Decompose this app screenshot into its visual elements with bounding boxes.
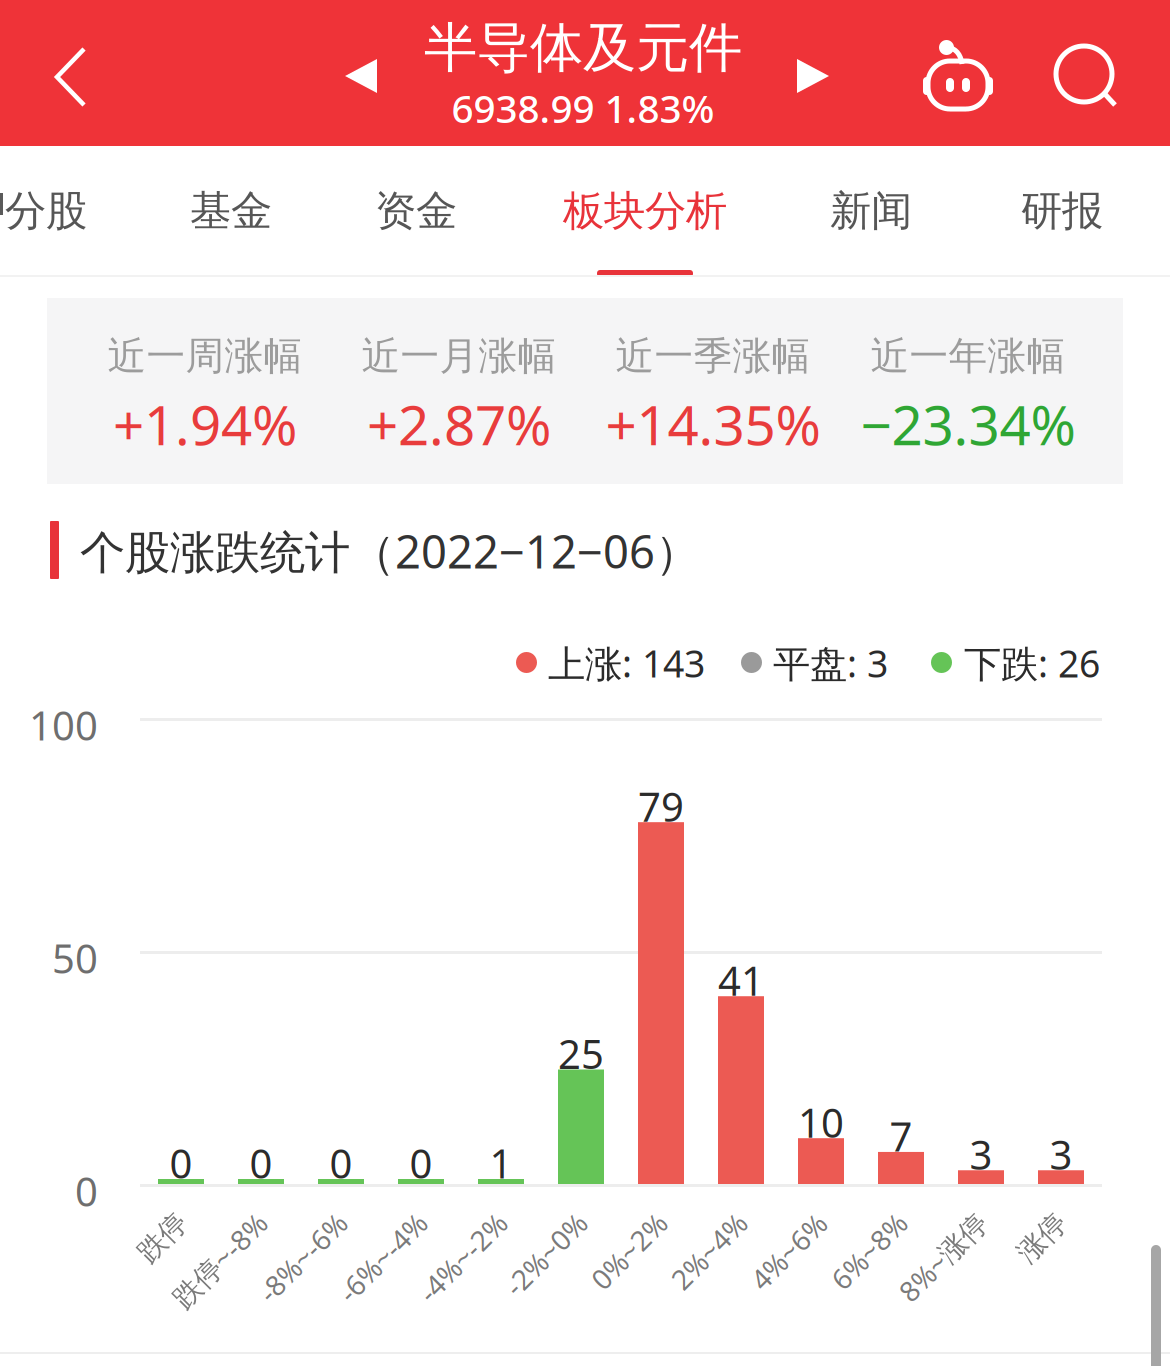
staticText: +14.35% bbox=[605, 388, 820, 460]
staticText: 跌停~-8% bbox=[160, 1242, 280, 1279]
button[interactable]: 分股 bbox=[0, 146, 146, 276]
staticText: −23.34% bbox=[860, 388, 1075, 460]
staticText: 涨停 bbox=[1014, 1221, 1070, 1255]
button[interactable]: Back bbox=[0, 0, 120, 146]
staticText: 近一季涨幅 bbox=[615, 332, 810, 380]
staticText: 基金 bbox=[190, 186, 272, 236]
staticText: -6%~-4% bbox=[327, 1239, 439, 1276]
staticText: 79 bbox=[638, 780, 684, 833]
staticText: -8%~-6% bbox=[247, 1239, 359, 1276]
staticText: 0 bbox=[169, 1136, 192, 1189]
staticText: 下跌: 26 bbox=[964, 638, 1100, 688]
button[interactable]: Next sector bbox=[767, 0, 863, 146]
staticText: 新闻 bbox=[830, 186, 912, 236]
staticText: 平盘: 3 bbox=[773, 638, 888, 688]
staticText: 资金 bbox=[375, 186, 457, 236]
staticText: 50 bbox=[52, 931, 98, 984]
staticText: +1.94% bbox=[113, 388, 297, 460]
staticText: 25 bbox=[558, 1027, 604, 1080]
staticText: 4%~6% bbox=[742, 1233, 836, 1270]
staticText: 研报 bbox=[1021, 186, 1103, 236]
staticText: 3 bbox=[1049, 1128, 1072, 1181]
staticText: 0%~2% bbox=[582, 1232, 676, 1270]
button[interactable]: 基金 bbox=[131, 146, 331, 276]
staticText: 6%~8% bbox=[822, 1232, 916, 1270]
staticText: 半导体及元件 bbox=[424, 15, 742, 81]
staticText: 0 bbox=[329, 1136, 352, 1189]
staticText: 分股 bbox=[5, 186, 87, 236]
staticText: 7 bbox=[889, 1109, 912, 1162]
staticText: 近一年涨幅 bbox=[870, 332, 1065, 380]
button[interactable]: 研报 bbox=[962, 146, 1162, 276]
staticText: 近一周涨幅 bbox=[107, 332, 302, 380]
staticText: 1 bbox=[489, 1136, 512, 1189]
staticText: 8%~涨停 bbox=[887, 1238, 998, 1276]
button[interactable]: 新闻 bbox=[771, 146, 971, 276]
button[interactable]: Search bbox=[1054, 0, 1170, 146]
button[interactable]: 资金 bbox=[316, 146, 516, 276]
staticText: 6938.99 1.83% bbox=[451, 82, 714, 134]
staticText: -2%~0% bbox=[494, 1236, 597, 1273]
staticText: 板块分析 bbox=[563, 186, 727, 236]
staticText: 个股涨跌统计（2022−12−06） bbox=[80, 521, 700, 581]
staticText: 41 bbox=[718, 954, 764, 1007]
staticText: 近一月涨幅 bbox=[361, 332, 556, 380]
staticText: 2%~4% bbox=[662, 1232, 756, 1270]
staticText: 100 bbox=[29, 698, 98, 751]
staticText: 上涨: 143 bbox=[548, 638, 705, 688]
button[interactable]: Assistant bbox=[898, 0, 1018, 146]
staticText: 0 bbox=[409, 1136, 432, 1189]
button[interactable]: Previous sector bbox=[315, 0, 411, 146]
button[interactable]: 板块分析 bbox=[545, 146, 745, 276]
staticText: +2.87% bbox=[367, 388, 551, 460]
staticText: 跌停 bbox=[134, 1220, 190, 1255]
staticText: 10 bbox=[798, 1096, 844, 1149]
staticText: 0 bbox=[75, 1164, 98, 1217]
staticText: 0 bbox=[249, 1136, 272, 1189]
staticText: -4%~-2% bbox=[407, 1239, 519, 1276]
staticText: 3 bbox=[969, 1128, 992, 1181]
